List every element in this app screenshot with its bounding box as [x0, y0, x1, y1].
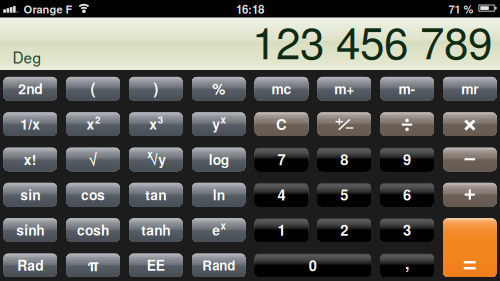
- button[interactable]: Minus: [443, 147, 496, 171]
- staticText: C: [276, 113, 287, 134]
- button[interactable]: x!: [4, 147, 57, 171]
- button[interactable]: sin: [4, 183, 57, 206]
- button[interactable]: 7: [255, 147, 308, 171]
- button[interactable]: mc: [255, 77, 308, 100]
- button[interactable]: Rand: [192, 253, 245, 277]
- staticText: tan: [145, 185, 166, 204]
- staticText: 3: [403, 219, 411, 240]
- staticText: y: [212, 114, 220, 134]
- staticText: mc: [271, 79, 291, 99]
- button[interactable]: 5: [318, 183, 371, 206]
- button[interactable]: y: [192, 112, 245, 136]
- staticText: 1/x: [20, 114, 40, 134]
- staticText: 7: [277, 149, 285, 170]
- staticText: 0: [309, 255, 317, 276]
- staticText: 2nd: [18, 79, 42, 99]
- button[interactable]: sinh: [4, 218, 57, 242]
- staticText: x!: [24, 149, 37, 169]
- staticText: cosh: [77, 220, 109, 240]
- button[interactable]: EE: [129, 253, 182, 277]
- staticText: x: [220, 218, 225, 232]
- button[interactable]: log: [192, 147, 245, 171]
- staticText: x: [220, 113, 225, 126]
- button[interactable]: tan: [129, 183, 182, 206]
- button[interactable]: 2nd: [4, 77, 57, 100]
- button[interactable]: 8: [318, 147, 371, 171]
- button[interactable]: Multiply: [443, 112, 496, 136]
- button[interactable]: 2: [318, 218, 371, 242]
- staticText: 2: [340, 219, 348, 240]
- button[interactable]: ,: [380, 253, 434, 277]
- staticText: Deg: [12, 46, 41, 68]
- button[interactable]: 1: [255, 218, 308, 242]
- button[interactable]: e: [192, 218, 245, 242]
- staticText: (: [90, 77, 95, 99]
- button[interactable]: 9: [380, 147, 434, 171]
- staticText: EE: [147, 255, 165, 275]
- staticText: ,: [405, 251, 409, 274]
- button[interactable]: x: [66, 112, 120, 136]
- button[interactable]: x: [129, 147, 182, 171]
- button[interactable]: 3: [380, 218, 434, 242]
- button[interactable]: 4: [255, 183, 308, 206]
- button[interactable]: x: [129, 112, 182, 136]
- staticText: log: [209, 149, 229, 169]
- staticText: e: [212, 220, 220, 240]
- staticText: Orange F: [23, 1, 72, 17]
- staticText: tanh: [141, 220, 170, 240]
- staticText: x: [86, 114, 94, 134]
- button[interactable]: ln: [192, 183, 245, 206]
- button[interactable]: Plus: [443, 183, 496, 206]
- button[interactable]: Equals: [443, 218, 496, 277]
- staticText: 3: [158, 113, 163, 126]
- button[interactable]: 6: [380, 183, 434, 206]
- staticText: 123 456 789: [252, 9, 492, 72]
- staticText: sin: [20, 185, 40, 204]
- button[interactable]: 1/x: [4, 112, 57, 136]
- staticText: x: [147, 147, 152, 161]
- staticText: Rand: [202, 256, 235, 275]
- staticText: m-: [398, 79, 415, 99]
- staticText: 8: [340, 149, 348, 170]
- staticText: 6: [403, 184, 411, 205]
- button[interactable]: π: [66, 253, 120, 277]
- staticText: cos: [81, 185, 105, 204]
- staticText: √y: [150, 149, 166, 169]
- button[interactable]: Divide: [380, 112, 434, 136]
- button[interactable]: %: [192, 77, 245, 100]
- staticText: 16:18: [236, 1, 264, 17]
- button[interactable]: mr: [443, 77, 496, 100]
- staticText: mr: [461, 79, 478, 99]
- button[interactable]: ): [129, 77, 182, 100]
- staticText: 9: [403, 149, 411, 170]
- button[interactable]: Rad: [4, 253, 57, 277]
- staticText: sinh: [16, 220, 44, 240]
- staticText: 71 %: [448, 1, 473, 17]
- staticText: m+: [334, 79, 354, 99]
- staticText: ): [153, 77, 158, 99]
- button[interactable]: Plus minus: [318, 112, 371, 136]
- button[interactable]: cosh: [66, 218, 120, 242]
- staticText: 4: [277, 184, 285, 205]
- staticText: 5: [340, 184, 348, 205]
- button[interactable]: C: [255, 112, 308, 136]
- staticText: x: [149, 114, 157, 134]
- staticText: √: [88, 148, 97, 171]
- staticText: π: [87, 254, 98, 276]
- staticText: 2: [95, 113, 100, 126]
- staticText: 1: [277, 219, 285, 240]
- button[interactable]: cos: [66, 183, 120, 206]
- button[interactable]: (: [66, 77, 120, 100]
- staticText: ln: [213, 185, 225, 204]
- button[interactable]: m+: [318, 77, 371, 100]
- button[interactable]: 0: [255, 253, 371, 277]
- button[interactable]: m-: [380, 77, 434, 100]
- staticText: %: [212, 78, 225, 99]
- button[interactable]: tanh: [129, 218, 182, 242]
- staticText: Rad: [17, 255, 43, 275]
- button[interactable]: √: [66, 147, 120, 171]
